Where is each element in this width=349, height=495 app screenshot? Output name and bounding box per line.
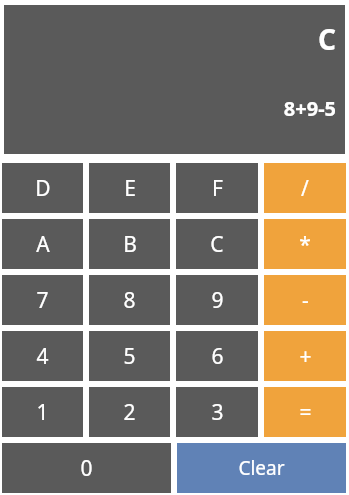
- staticText: 5: [123, 342, 136, 371]
- staticText: 8: [123, 286, 136, 315]
- button[interactable]: =: [264, 387, 346, 437]
- button[interactable]: F: [176, 163, 258, 213]
- staticText: E: [124, 174, 136, 203]
- staticText: 2: [123, 398, 136, 427]
- button[interactable]: 8: [89, 275, 170, 325]
- staticText: 8+9-5: [283, 95, 336, 122]
- button[interactable]: /: [264, 163, 346, 213]
- button[interactable]: -: [264, 275, 346, 325]
- staticText: 6: [211, 342, 224, 371]
- staticText: 4: [36, 342, 49, 371]
- button[interactable]: 3: [176, 387, 258, 437]
- staticText: 1: [36, 398, 49, 427]
- button[interactable]: C: [176, 219, 258, 269]
- button[interactable]: 1: [2, 387, 83, 437]
- button[interactable]: E: [89, 163, 170, 213]
- button[interactable]: Clear: [177, 443, 346, 493]
- button[interactable]: 6: [176, 331, 258, 381]
- staticText: A: [36, 230, 50, 259]
- staticText: 0: [80, 454, 93, 483]
- button[interactable]: B: [89, 219, 170, 269]
- staticText: B: [123, 230, 137, 259]
- button[interactable]: 0: [2, 443, 171, 493]
- staticText: C: [318, 20, 336, 58]
- staticText: -: [302, 286, 309, 315]
- button[interactable]: *: [264, 219, 346, 269]
- staticText: =: [299, 398, 312, 427]
- button[interactable]: 2: [89, 387, 170, 437]
- button[interactable]: +: [264, 331, 346, 381]
- staticText: 3: [211, 398, 224, 427]
- staticText: C: [210, 230, 224, 259]
- staticText: +: [299, 342, 312, 371]
- button[interactable]: A: [2, 219, 83, 269]
- staticText: 9: [211, 286, 224, 315]
- button[interactable]: 4: [2, 331, 83, 381]
- button[interactable]: 5: [89, 331, 170, 381]
- button[interactable]: 9: [176, 275, 258, 325]
- staticText: Clear: [238, 455, 285, 481]
- staticText: D: [35, 174, 51, 203]
- staticText: /: [301, 174, 309, 203]
- button[interactable]: D: [2, 163, 83, 213]
- button[interactable]: 7: [2, 275, 83, 325]
- staticText: *: [299, 230, 311, 259]
- staticText: 7: [36, 286, 49, 315]
- staticText: F: [212, 174, 223, 203]
